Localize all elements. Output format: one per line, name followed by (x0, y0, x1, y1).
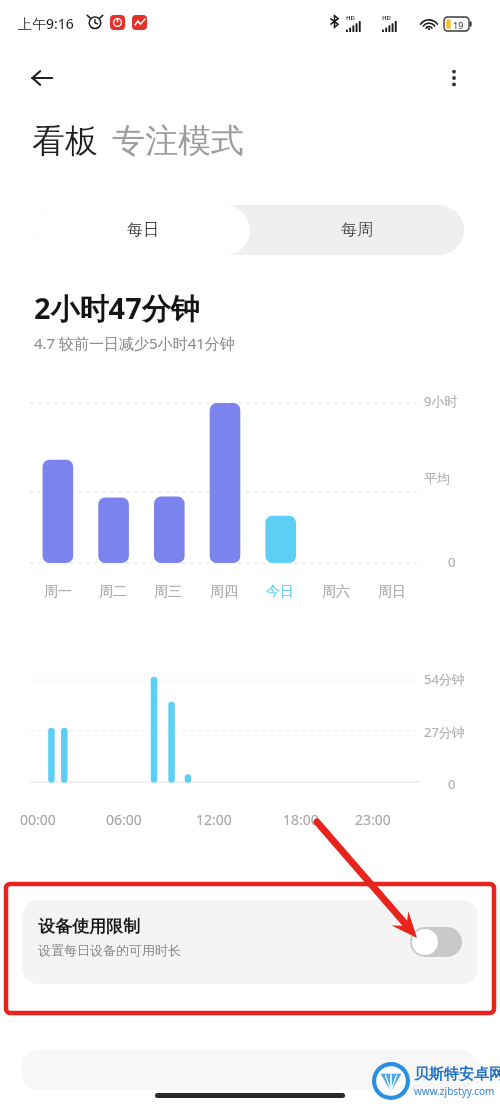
staticText: 看板 (32, 120, 98, 162)
button[interactable]: 周一 (30, 583, 85, 601)
button[interactable]: Back (20, 56, 64, 100)
staticText: 每日 (127, 220, 159, 240)
staticText: 平均 (424, 470, 450, 486)
staticText: 0 (448, 775, 456, 793)
staticText: 上午9:16 (18, 14, 74, 33)
button[interactable]: 周三 (140, 583, 196, 601)
staticText: 9小时 (424, 392, 458, 410)
button[interactable]: 专注模式 (112, 120, 244, 162)
staticText: 周二 (99, 583, 127, 601)
staticText: 专注模式 (112, 120, 244, 162)
staticText: 06:00 (106, 810, 142, 829)
staticText: 周三 (154, 583, 182, 601)
button[interactable]: 周六 (308, 583, 364, 601)
staticText: 今日 (266, 583, 294, 601)
button[interactable]: 周四 (196, 583, 252, 601)
button[interactable]: 周日 (364, 583, 420, 601)
staticText: 设置每日设备的可用时长 (38, 942, 181, 958)
staticText: 27分钟 (424, 723, 465, 741)
button[interactable]: 设备使用限制 (22, 900, 478, 984)
button[interactable]: 今日 (252, 583, 308, 601)
staticText: 2小时47分钟 (34, 288, 200, 328)
staticText: 贝斯特安卓网 (414, 1065, 500, 1084)
staticText: 设备使用限制 (38, 916, 140, 937)
staticText: 周六 (322, 583, 350, 601)
button[interactable]: 周二 (85, 583, 140, 601)
staticText: 12:00 (196, 810, 232, 829)
staticText: 0 (448, 553, 456, 571)
staticText: 54分钟 (424, 670, 465, 688)
button[interactable] (22, 1050, 478, 1090)
button[interactable]: More options (432, 56, 476, 100)
staticText: 23:00 (355, 810, 391, 829)
staticText: www.zjbstyy.com (414, 1084, 495, 1098)
staticText: 19 (453, 19, 464, 31)
staticText: 周一 (44, 583, 72, 601)
staticText: HD (382, 14, 391, 22)
button[interactable]: 每周 (250, 205, 464, 255)
staticText: 周日 (378, 583, 406, 601)
button[interactable]: 每日 (36, 205, 250, 255)
staticText: 每周 (341, 220, 373, 240)
staticText: HD (346, 14, 355, 22)
staticText: 4.7 较前一日减少5小时41分钟 (34, 333, 235, 353)
button[interactable]: Device usage limit toggle (410, 927, 462, 957)
staticText: 00:00 (20, 810, 56, 829)
staticText: 周四 (210, 583, 238, 601)
button[interactable]: 看板 (32, 120, 98, 162)
staticText: 18:00 (283, 810, 319, 829)
